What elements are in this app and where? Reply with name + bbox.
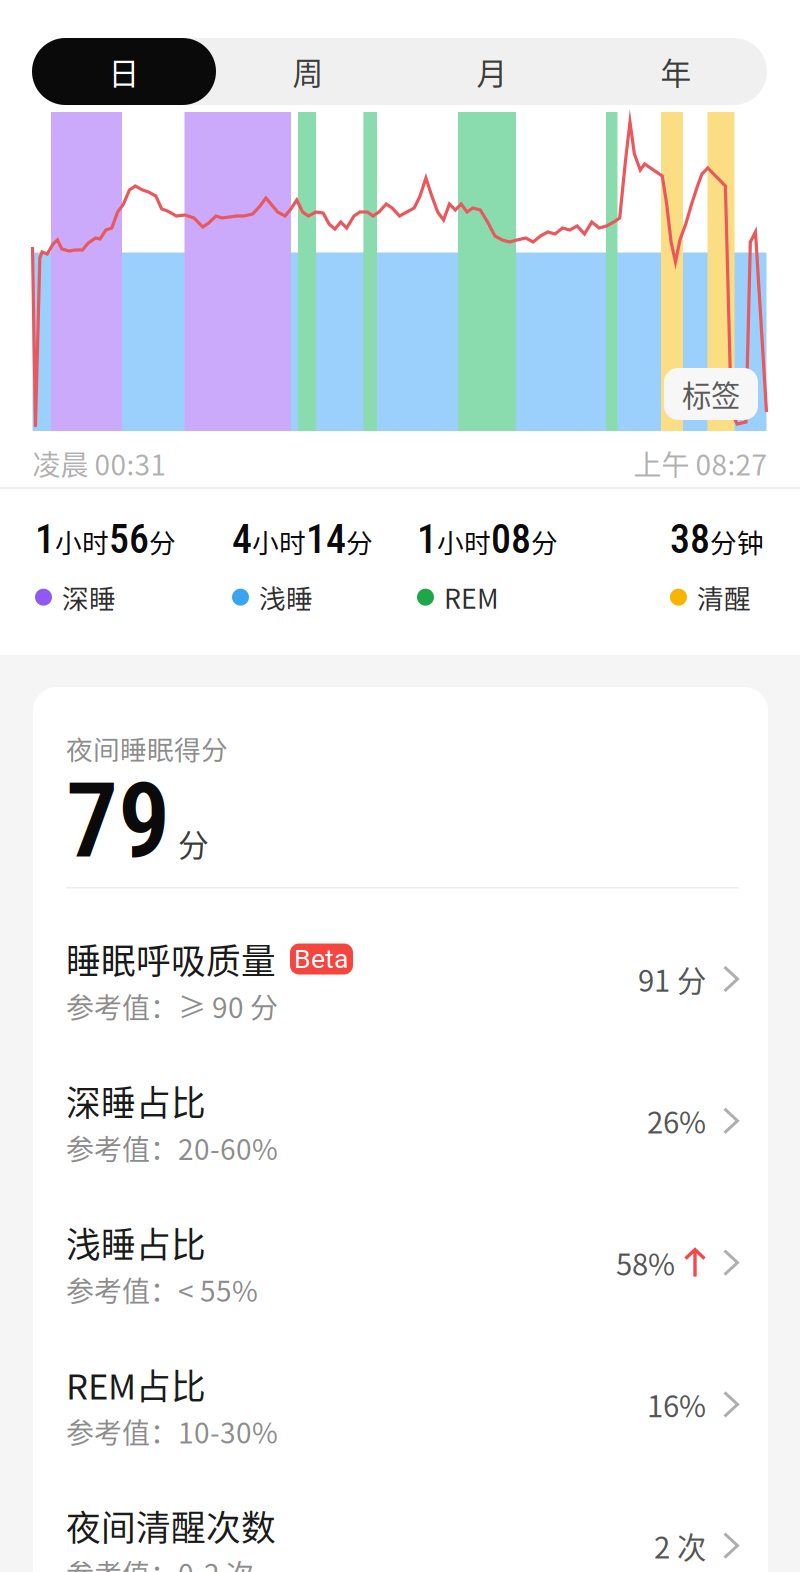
staticText: 夜间清醒次数 xyxy=(66,1500,276,1551)
staticText: 参考值：≥ 90 分 xyxy=(66,986,278,1026)
staticText: 上午 08:27 xyxy=(633,443,767,483)
staticText: 小时 xyxy=(252,522,306,561)
button[interactable]: 标签 xyxy=(664,368,758,420)
staticText: 标签 xyxy=(682,373,740,415)
staticText: 56 xyxy=(109,516,149,563)
staticText: 分 xyxy=(149,522,176,561)
staticText: 小时 xyxy=(55,522,109,561)
staticText: 小时 xyxy=(437,522,491,561)
staticText: 参考值：< 55% xyxy=(66,1269,258,1310)
button[interactable]: 深睡占比 xyxy=(66,1079,739,1183)
staticText: 深睡占比 xyxy=(66,1076,206,1126)
button[interactable]: REM占比 xyxy=(66,1362,739,1466)
button[interactable]: 日 xyxy=(32,38,216,105)
button[interactable]: 年 xyxy=(584,38,768,105)
staticText: 16% xyxy=(647,1383,706,1426)
staticText: 浅睡 xyxy=(259,578,313,616)
staticText: 91 分 xyxy=(638,958,706,1000)
staticText: 年 xyxy=(660,49,691,94)
staticText: 1 xyxy=(35,516,55,563)
staticText: 26% xyxy=(647,1100,706,1142)
staticText: 58% xyxy=(616,1241,675,1284)
staticText: 凌晨 00:31 xyxy=(32,443,166,483)
staticText: 深睡 xyxy=(62,578,116,616)
staticText: 1 xyxy=(417,516,437,563)
staticText: Beta xyxy=(294,943,349,975)
staticText: 4 xyxy=(232,516,252,563)
staticText: 参考值：0-2 次 xyxy=(66,1552,254,1572)
button[interactable]: 夜间清醒次数 xyxy=(66,1504,739,1572)
button[interactable]: 睡眠呼吸质量 xyxy=(66,937,739,1041)
staticText: 79 xyxy=(66,760,170,882)
staticText: REM xyxy=(444,578,499,616)
staticText: 浅睡占比 xyxy=(66,1217,206,1268)
staticText: 14 xyxy=(306,516,346,563)
staticText: 参考值：20-60% xyxy=(66,1127,278,1168)
staticText: 周 xyxy=(292,49,323,94)
staticText: 08 xyxy=(491,516,531,563)
staticText: 分 xyxy=(178,821,209,865)
staticText: 清醒 xyxy=(697,578,751,616)
button[interactable]: 周 xyxy=(216,38,400,105)
staticText: 睡眠呼吸质量 xyxy=(66,934,276,984)
staticText: 分 xyxy=(346,522,373,561)
staticText: 夜间睡眠得分 xyxy=(66,729,228,767)
button[interactable]: 月 xyxy=(400,38,584,105)
staticText: 38 xyxy=(670,516,710,563)
staticText: 日 xyxy=(108,49,139,94)
staticText: REM占比 xyxy=(66,1359,206,1409)
staticText: 2 次 xyxy=(654,1524,706,1567)
staticText: 分 xyxy=(531,522,558,561)
staticText: 参考值：10-30% xyxy=(66,1411,278,1452)
staticText: 月 xyxy=(476,49,507,94)
staticText: 分钟 xyxy=(710,522,764,561)
button[interactable]: 浅睡占比 xyxy=(66,1221,739,1325)
